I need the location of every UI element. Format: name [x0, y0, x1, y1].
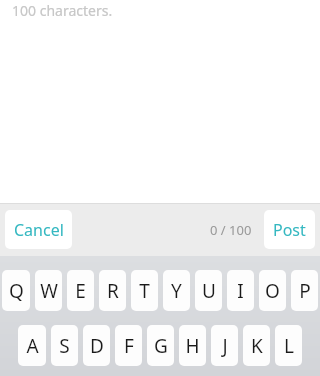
staticText: U: [202, 278, 216, 304]
button[interactable]: Cancel: [5, 210, 72, 249]
button[interactable]: F: [115, 325, 142, 366]
staticText: A: [26, 333, 39, 359]
button[interactable]: R: [99, 270, 126, 311]
button[interactable]: Y: [163, 270, 190, 311]
button[interactable]: J: [211, 325, 238, 366]
staticText: I: [237, 278, 244, 304]
staticText: E: [75, 278, 86, 304]
staticText: Cancel: [14, 219, 64, 241]
button[interactable]: W: [35, 270, 62, 311]
button[interactable]: H: [179, 325, 206, 366]
staticText: 0 / 100: [210, 221, 252, 239]
staticText: Y: [171, 278, 182, 304]
staticText: Post: [273, 219, 306, 241]
staticText: F: [124, 333, 134, 359]
button[interactable]: I: [227, 270, 254, 311]
staticText: P: [299, 278, 311, 304]
button[interactable]: Post: [264, 210, 315, 249]
button[interactable]: Q: [2, 270, 30, 311]
button[interactable]: T: [131, 270, 158, 311]
button[interactable]: P: [291, 270, 318, 311]
button[interactable]: L: [275, 325, 302, 366]
button[interactable]: U: [195, 270, 222, 311]
staticText: Q: [9, 278, 24, 304]
button[interactable]: D: [83, 325, 110, 366]
staticText: H: [185, 333, 200, 359]
staticText: S: [59, 333, 70, 359]
button[interactable]: K: [243, 325, 270, 366]
button[interactable]: O: [259, 270, 286, 311]
staticText: T: [139, 278, 150, 304]
staticText: K: [251, 333, 263, 359]
staticText: D: [90, 333, 104, 359]
staticText: R: [107, 278, 119, 304]
staticText: J: [222, 333, 228, 359]
button[interactable]: G: [147, 325, 174, 366]
button[interactable]: E: [67, 270, 94, 311]
staticText: O: [265, 278, 280, 304]
button[interactable]: A: [18, 325, 46, 366]
staticText: 100 characters.: [12, 1, 113, 20]
staticText: W: [40, 278, 58, 304]
button[interactable]: S: [51, 325, 78, 366]
staticText: L: [284, 333, 294, 359]
staticText: G: [154, 333, 168, 359]
